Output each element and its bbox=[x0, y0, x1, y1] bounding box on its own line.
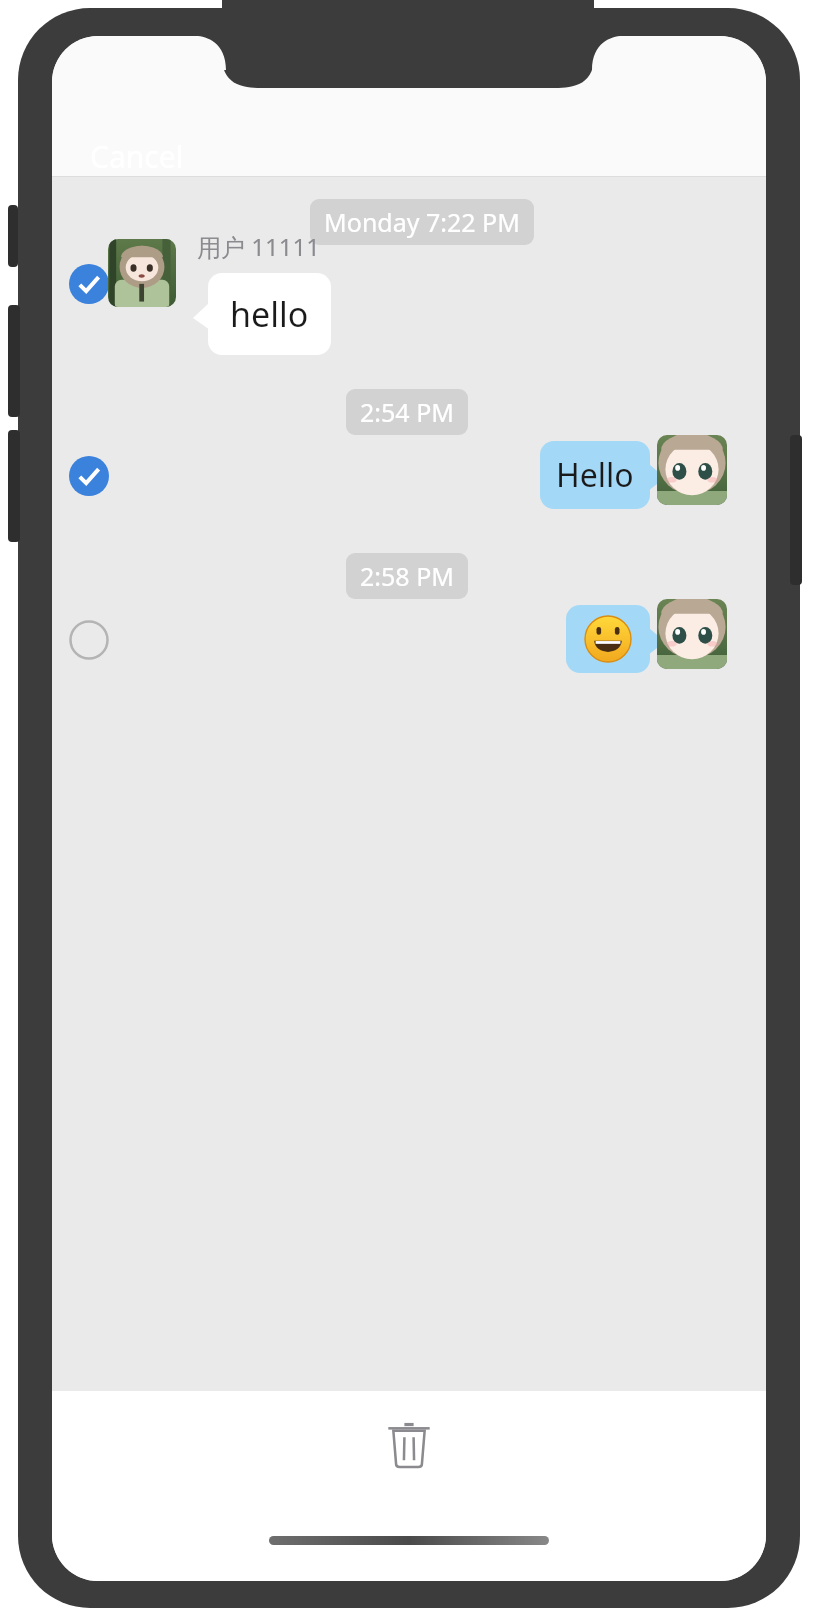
button[interactable]: Selected bbox=[62, 257, 116, 311]
button[interactable]: Selected bbox=[62, 449, 116, 503]
button[interactable]: Avatar bbox=[657, 435, 727, 505]
staticText: 2:58 PM bbox=[360, 559, 454, 593]
button[interactable]: Delete bbox=[368, 1404, 450, 1486]
button[interactable]: Not selected bbox=[62, 613, 116, 667]
button[interactable]: Avatar bbox=[657, 599, 727, 669]
staticText: Cancel bbox=[90, 136, 184, 177]
button[interactable]: hello bbox=[193, 273, 332, 355]
staticText: Monday 7:22 PM bbox=[324, 205, 520, 239]
staticText: hello bbox=[230, 291, 309, 337]
button[interactable]: Hello bbox=[540, 441, 666, 509]
button[interactable]: Cancel bbox=[82, 130, 192, 183]
staticText: 2:54 PM bbox=[360, 395, 454, 429]
staticText: Hello bbox=[556, 453, 634, 497]
staticText: 用户 11111 bbox=[197, 230, 320, 263]
button[interactable] bbox=[566, 605, 666, 673]
button[interactable]: Avatar bbox=[108, 239, 176, 307]
